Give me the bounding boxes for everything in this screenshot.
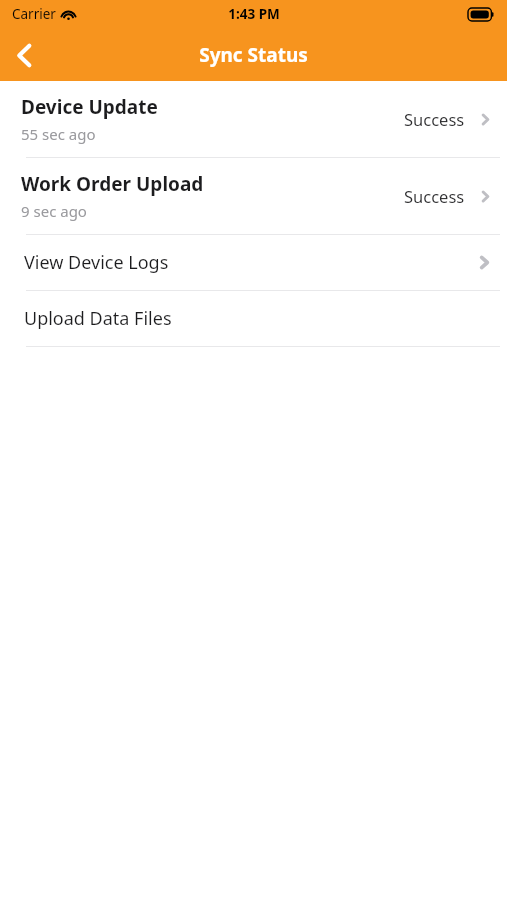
staticText: View Device Logs xyxy=(24,250,479,275)
staticText: 1:43 PM xyxy=(228,5,280,23)
staticText: Upload Data Files xyxy=(24,306,490,331)
button[interactable]: Device Update xyxy=(0,81,507,157)
staticText: Work Order Upload xyxy=(21,171,204,197)
button[interactable]: View Device Logs xyxy=(0,235,507,290)
staticText: 55 sec ago xyxy=(21,124,96,144)
staticText: Success xyxy=(404,108,465,130)
staticText: 9 sec ago xyxy=(21,201,87,221)
staticText: Carrier xyxy=(12,5,56,23)
staticText: Sync Status xyxy=(199,42,308,68)
button[interactable]: Upload Data Files xyxy=(0,291,507,346)
staticText: Success xyxy=(404,185,465,207)
button[interactable]: Work Order Upload xyxy=(0,158,507,234)
staticText: Device Update xyxy=(21,94,158,120)
button[interactable]: Back xyxy=(0,31,48,79)
